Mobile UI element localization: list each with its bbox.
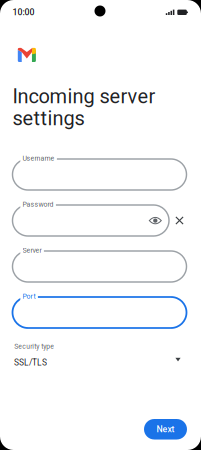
staticText: settings <box>13 107 85 130</box>
staticText: 10:00 <box>12 7 34 17</box>
staticText: Security type <box>14 342 54 350</box>
staticText: Incoming server <box>13 85 156 108</box>
button[interactable]: Next <box>144 419 187 439</box>
staticText: Next <box>156 424 174 434</box>
button[interactable]: Remove account <box>171 212 188 229</box>
staticText: Port <box>22 292 35 300</box>
staticText: Server <box>22 246 41 254</box>
staticText: SSL/TLS <box>14 358 47 367</box>
staticText: Password <box>22 200 53 208</box>
staticText: Username <box>22 154 54 162</box>
button[interactable]: Security type <box>12 340 186 372</box>
